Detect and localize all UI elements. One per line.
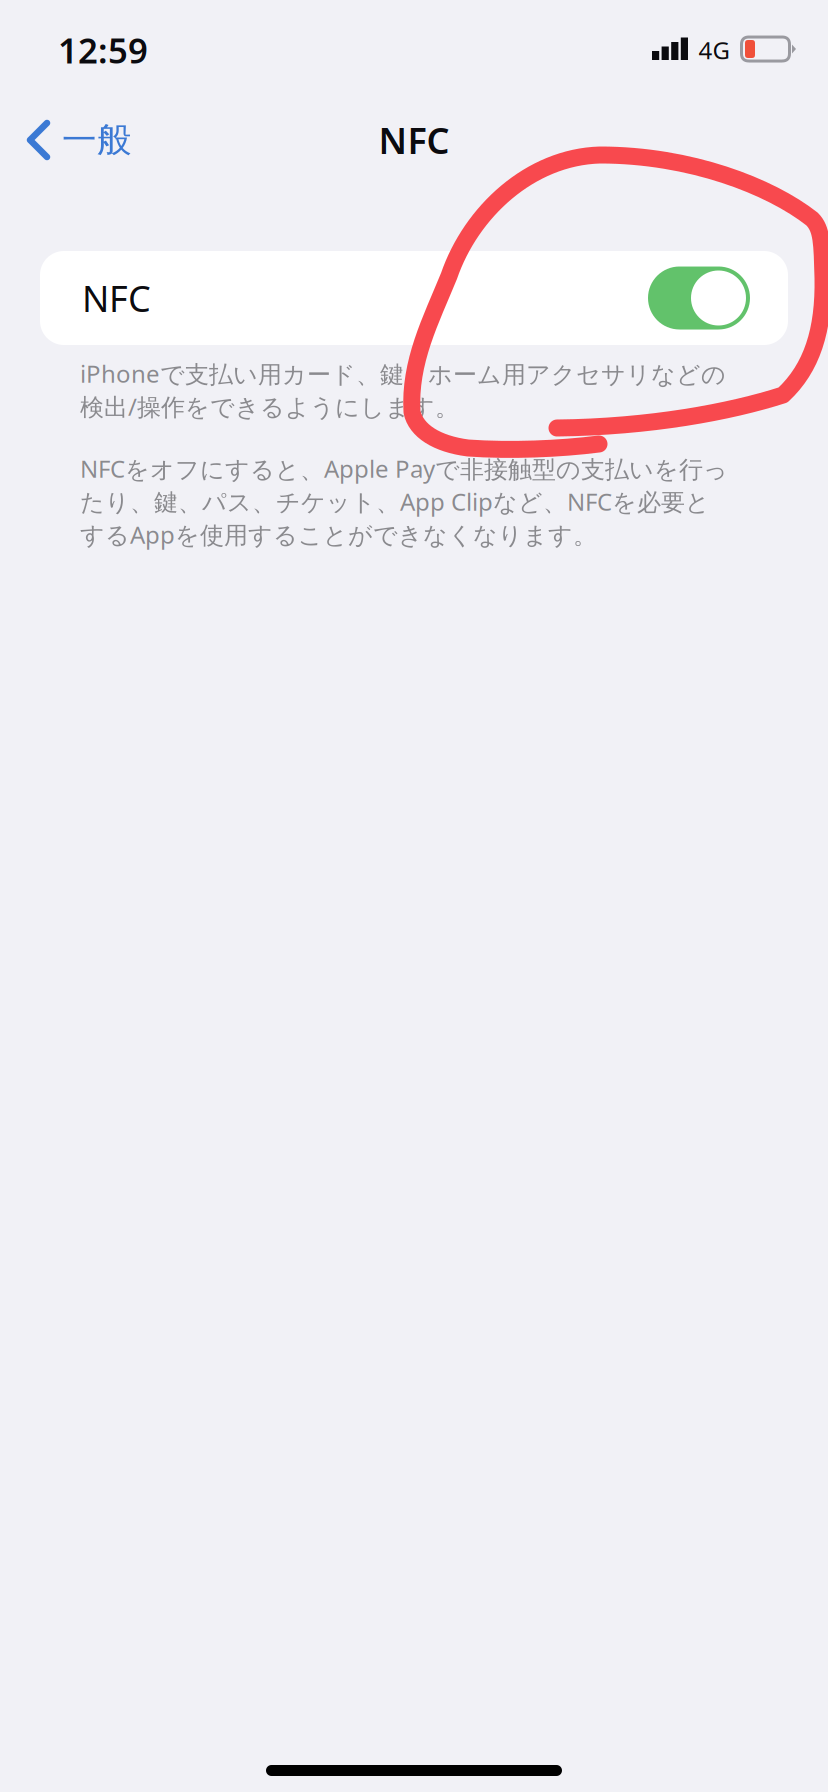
button[interactable]: 一般	[0, 100, 300, 180]
staticText: 検出/操作をできるようにします。	[80, 391, 459, 422]
staticText: 12:59	[58, 27, 148, 73]
staticText: NFC	[378, 116, 449, 164]
staticText: するAppを使用することができなくなります。	[80, 519, 597, 550]
staticText: NFC	[82, 274, 151, 322]
staticText: iPhoneで支払い用カード、鍵、ホーム用アクセサリなどの	[80, 357, 726, 389]
staticText: 一般	[62, 119, 132, 161]
staticText: たり、鍵、パス、チケット、App Clipなど、NFCを必要と	[80, 486, 710, 517]
staticText: NFCをオフにすると、Apple Payで非接触型の支払いを行っ	[80, 452, 728, 484]
button[interactable]: NFC, on	[648, 266, 750, 329]
staticText: 4G	[698, 34, 729, 66]
